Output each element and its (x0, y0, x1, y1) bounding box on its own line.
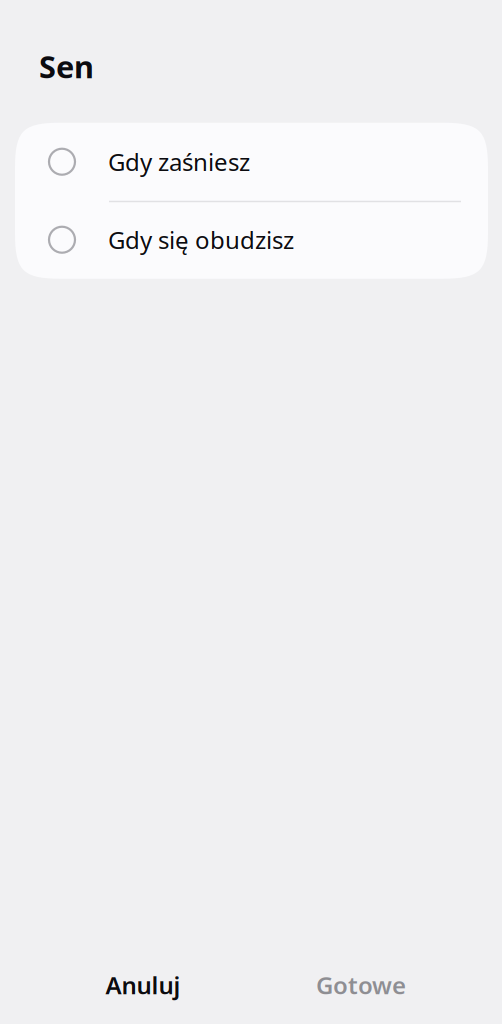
button[interactable]: Gdy zaśniesz (15, 123, 488, 201)
button[interactable]: Gotowe (252, 963, 470, 1007)
button[interactable]: Anuluj (34, 963, 252, 1007)
staticText: Gotowe (316, 969, 406, 1001)
staticText: Anuluj (105, 969, 180, 1001)
button[interactable]: Gdy się obudzisz (15, 201, 488, 279)
staticText: Gdy zaśniesz (108, 146, 250, 178)
staticText: Sen (39, 46, 94, 87)
staticText: Gdy się obudzisz (108, 224, 294, 256)
